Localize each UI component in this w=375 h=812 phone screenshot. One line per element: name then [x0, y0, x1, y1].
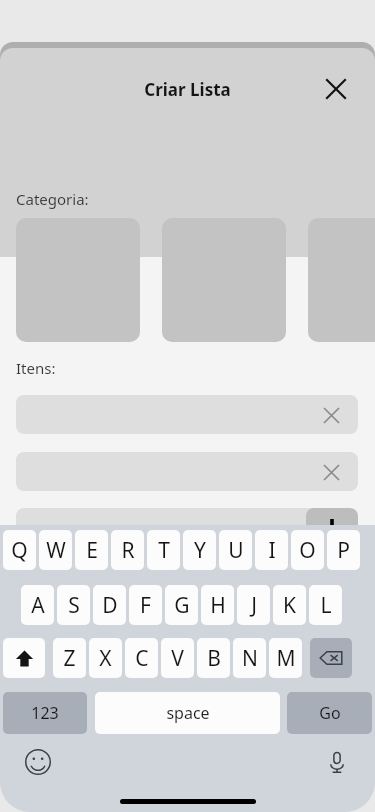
staticText: A: [31, 591, 45, 620]
button[interactable]: F: [129, 585, 162, 625]
staticText: 123: [31, 702, 59, 724]
button[interactable]: J: [237, 585, 270, 625]
staticText: Go: [319, 702, 341, 724]
button[interactable]: Remover item: [16, 395, 358, 434]
staticText: X: [99, 644, 112, 673]
staticText: Categoria:: [16, 189, 89, 209]
button[interactable]: Adicionar item: [306, 508, 358, 525]
button[interactable]: O: [291, 530, 324, 570]
staticText: G: [174, 591, 190, 620]
button[interactable]: N: [233, 638, 266, 678]
button[interactable]: Ditado: [324, 749, 350, 775]
button[interactable]: M: [269, 638, 302, 678]
staticText: R: [121, 536, 135, 565]
button[interactable]: D: [93, 585, 126, 625]
staticText: T: [158, 536, 170, 565]
button[interactable]: I: [255, 530, 288, 570]
staticText: Itens:: [16, 358, 56, 378]
button[interactable]: Emoji: [25, 749, 51, 775]
button[interactable]: Go: [287, 692, 372, 734]
button[interactable]: T: [147, 530, 180, 570]
staticText: Criar Lista: [144, 78, 231, 101]
staticText: Y: [194, 536, 206, 565]
staticText: E: [86, 536, 98, 565]
button[interactable]: C: [125, 638, 158, 678]
button[interactable]: Adicionar item: [16, 508, 358, 525]
button[interactable]: Remover item: [315, 399, 347, 431]
button[interactable]: Fechar: [318, 71, 354, 107]
button[interactable]: X: [89, 638, 122, 678]
button[interactable]: Remover item: [315, 456, 347, 488]
staticText: O: [299, 536, 316, 565]
button[interactable]: L: [309, 585, 342, 625]
staticText: K: [283, 591, 296, 620]
staticText: P: [337, 536, 350, 565]
button[interactable]: K: [273, 585, 306, 625]
staticText: D: [102, 591, 118, 620]
staticText: C: [135, 644, 149, 673]
staticText: L: [320, 591, 332, 620]
button[interactable]: Backspace: [310, 638, 352, 678]
staticText: H: [210, 591, 226, 620]
staticText: I: [268, 536, 276, 565]
button[interactable]: Q: [3, 530, 36, 570]
staticText: B: [207, 644, 221, 673]
button[interactable]: S: [57, 585, 90, 625]
button[interactable]: V: [161, 638, 194, 678]
button[interactable]: space: [95, 692, 280, 734]
button[interactable]: R: [111, 530, 144, 570]
staticText: V: [171, 644, 184, 673]
button[interactable]: Y: [183, 530, 216, 570]
button[interactable]: W: [39, 530, 72, 570]
button[interactable]: Shift: [3, 638, 45, 678]
staticText: space: [166, 702, 210, 724]
staticText: N: [242, 644, 258, 673]
staticText: M: [276, 644, 296, 673]
button[interactable]: P: [327, 530, 360, 570]
staticText: Z: [63, 644, 76, 673]
button[interactable]: E: [75, 530, 108, 570]
staticText: U: [228, 536, 244, 565]
staticText: J: [251, 591, 257, 620]
button[interactable]: Z: [53, 638, 86, 678]
staticText: S: [68, 591, 80, 620]
staticText: F: [140, 591, 151, 620]
button[interactable]: U: [219, 530, 252, 570]
button[interactable]: A: [21, 585, 54, 625]
button[interactable]: B: [197, 638, 230, 678]
staticText: Q: [11, 536, 28, 565]
button[interactable]: 123: [3, 692, 87, 734]
button[interactable]: Remover item: [16, 452, 358, 491]
button[interactable]: G: [165, 585, 198, 625]
staticText: W: [46, 536, 66, 565]
button[interactable]: H: [201, 585, 234, 625]
